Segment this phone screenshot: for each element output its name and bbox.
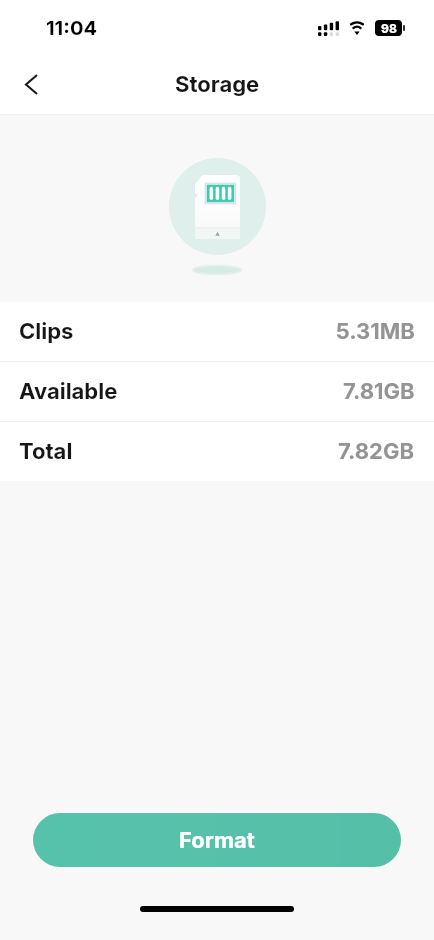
staticText: Storage <box>175 71 260 98</box>
staticText: 7.82GB <box>338 438 415 465</box>
button[interactable]: Back <box>9 63 53 107</box>
button[interactable]: Total <box>0 422 434 481</box>
staticText: 11:04 <box>46 16 97 40</box>
staticText: Clips <box>19 318 74 345</box>
staticText: Total <box>19 438 73 465</box>
button[interactable]: Available <box>0 362 434 421</box>
staticText: Format <box>179 827 255 854</box>
staticText: 98 <box>381 21 397 36</box>
button[interactable]: Clips <box>0 302 434 361</box>
staticText: 7.81GB <box>343 378 415 405</box>
staticText: Available <box>19 378 118 405</box>
staticText: 5.31MB <box>336 318 415 345</box>
button[interactable]: Format <box>33 813 401 867</box>
